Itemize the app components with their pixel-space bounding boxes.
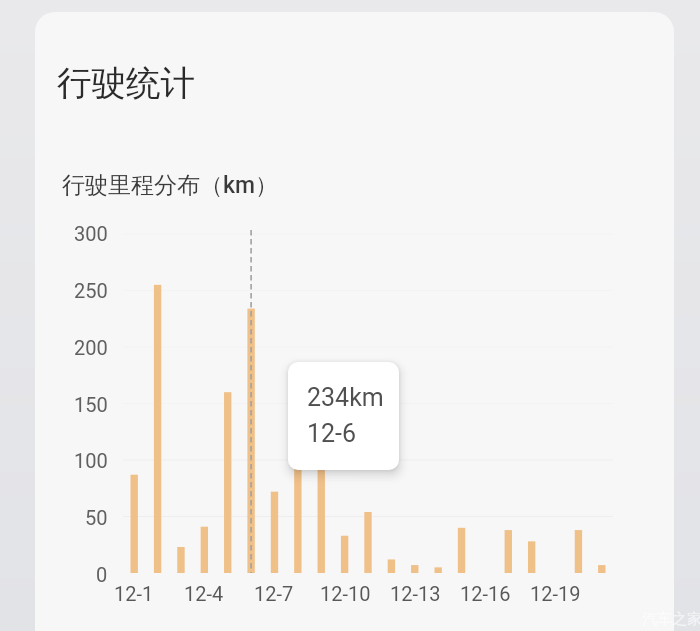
staticText: 200: [74, 336, 108, 359]
staticText: 12-16: [460, 582, 511, 605]
staticText: 汽车之家: [642, 610, 700, 629]
staticText: 234km: [307, 383, 384, 412]
staticText: 12-7: [254, 582, 294, 605]
staticText: 150: [74, 393, 108, 416]
button[interactable]: [35, 12, 674, 631]
staticText: 12-19: [530, 582, 581, 605]
staticText: 12-1: [114, 582, 154, 605]
button[interactable]: [288, 362, 399, 470]
staticText: 行驶里程分布（km）: [62, 171, 279, 200]
staticText: 300: [74, 222, 108, 245]
staticText: 12-10: [320, 582, 371, 605]
staticText: 0: [96, 563, 108, 586]
staticText: 12-4: [184, 582, 224, 605]
staticText: 50: [85, 506, 108, 529]
staticText: 12-6: [307, 419, 357, 448]
staticText: 12-13: [390, 582, 441, 605]
staticText: 250: [74, 279, 108, 302]
staticText: 100: [74, 449, 108, 472]
staticText: 行驶统计: [57, 62, 195, 105]
